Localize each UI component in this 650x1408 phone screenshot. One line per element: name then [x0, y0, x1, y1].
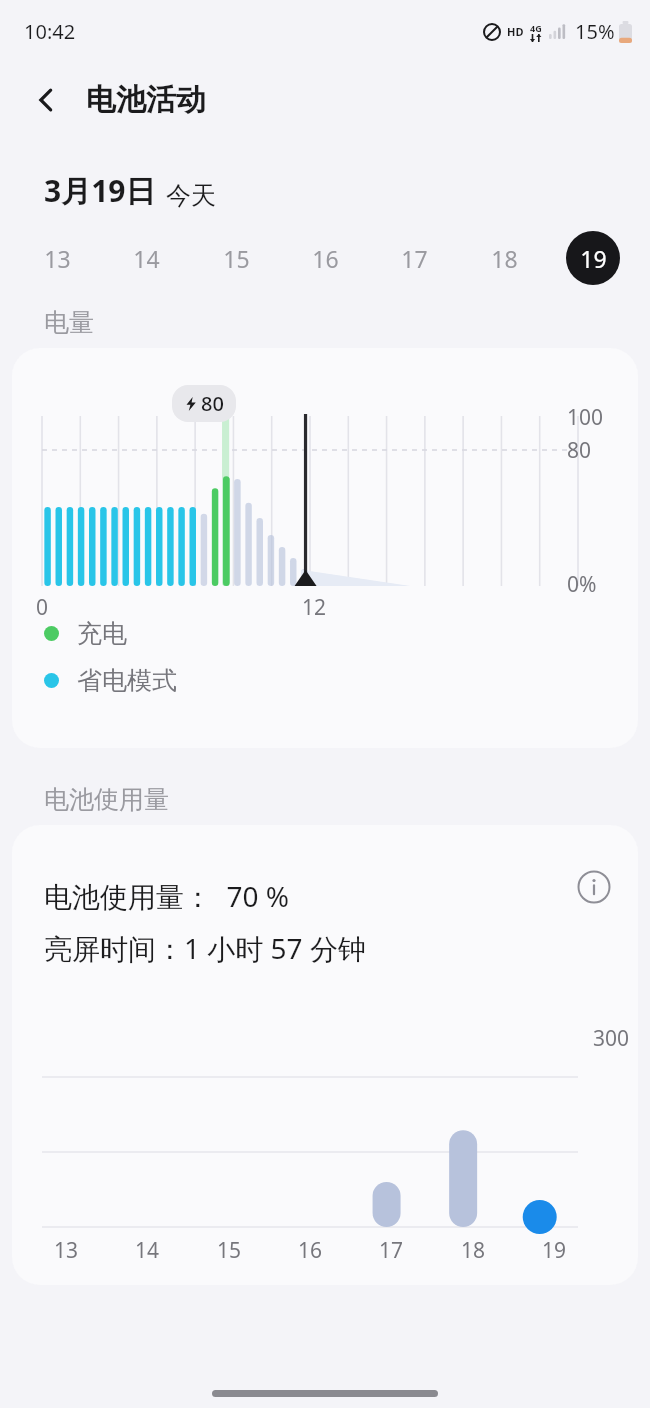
- staticText: 充电: [77, 618, 127, 649]
- staticText: 15: [223, 243, 250, 274]
- staticText: 80: [201, 390, 224, 417]
- staticText: 0%: [567, 570, 597, 599]
- staticText: 亮屏时间：1 小时 57 分钟: [44, 929, 366, 967]
- staticText: HD: [507, 24, 524, 39]
- staticText: 19: [542, 1236, 567, 1265]
- staticText: 电池使用量: [44, 784, 169, 815]
- staticText: 17: [379, 1236, 404, 1265]
- button[interactable]: 13: [30, 231, 84, 285]
- staticText: 18: [491, 243, 518, 274]
- staticText: 电池活动: [86, 81, 206, 119]
- staticText: 13: [44, 243, 71, 274]
- staticText: 4G: [530, 22, 542, 34]
- staticText: 17: [401, 243, 428, 274]
- staticText: 今天: [166, 180, 216, 211]
- staticText: 300: [593, 1024, 630, 1053]
- staticText: 10:42: [24, 18, 76, 45]
- staticText: 14: [135, 1236, 160, 1265]
- button[interactable]: 17: [387, 231, 441, 285]
- staticText: 电池使用量： 70 %: [44, 877, 290, 915]
- staticText: 15: [217, 1236, 242, 1265]
- button[interactable]: Back: [20, 74, 72, 126]
- button[interactable]: 15: [209, 231, 263, 285]
- staticText: 15%: [575, 18, 615, 45]
- button[interactable]: 16: [298, 231, 352, 285]
- button[interactable]: 14: [119, 231, 173, 285]
- staticText: 16: [312, 243, 339, 274]
- staticText: 电量: [44, 307, 94, 338]
- staticText: 12: [302, 593, 327, 622]
- button[interactable]: 18: [477, 231, 531, 285]
- staticText: 100: [567, 403, 604, 432]
- button[interactable]: 电池使用量： 70 %: [12, 825, 638, 1285]
- button[interactable]: 19: [566, 231, 620, 285]
- button[interactable]: Info: [570, 863, 618, 911]
- staticText: 14: [133, 243, 160, 274]
- staticText: 0: [36, 593, 49, 622]
- staticText: 3月19日: [44, 170, 156, 211]
- staticText: 省电模式: [77, 665, 177, 696]
- button[interactable]: 100: [12, 348, 638, 748]
- staticText: 80: [567, 436, 592, 465]
- staticText: 16: [298, 1236, 323, 1265]
- staticText: 18: [461, 1236, 486, 1265]
- staticText: 19: [580, 243, 607, 274]
- staticText: 13: [54, 1236, 79, 1265]
